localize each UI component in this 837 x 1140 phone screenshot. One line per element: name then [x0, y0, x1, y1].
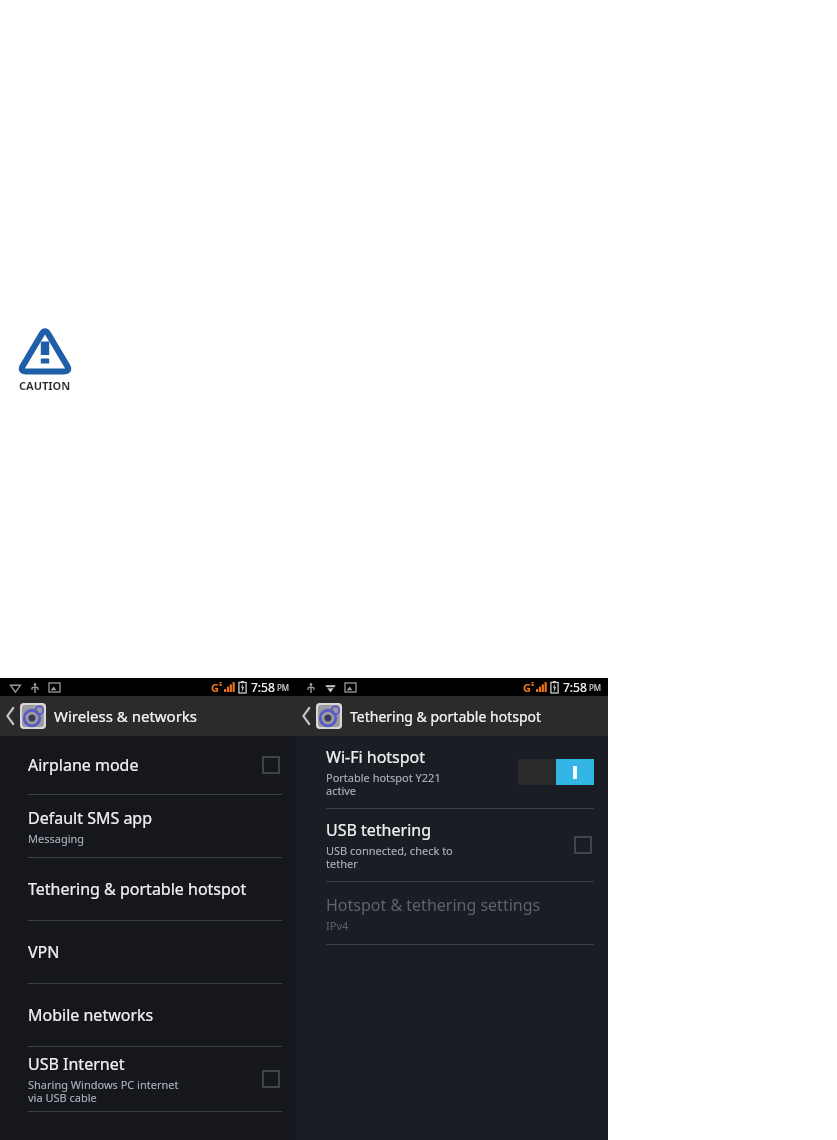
- staticText: G: [211, 680, 219, 695]
- staticText: 7:58: [251, 679, 275, 695]
- button[interactable]: Airplane mode: [0, 736, 296, 794]
- button[interactable]: VPN: [0, 921, 296, 983]
- staticText: IPv4: [326, 918, 349, 933]
- button[interactable]: Toggle checkbox: [260, 1068, 282, 1090]
- staticText: VPN: [28, 941, 60, 963]
- staticText: G: [523, 680, 531, 695]
- staticText: Default SMS app: [28, 807, 153, 829]
- staticText: PM: [589, 682, 602, 693]
- staticText: Wireless & networks: [54, 706, 198, 726]
- staticText: 7:58: [563, 679, 587, 695]
- button[interactable]: USB tethering: [296, 809, 608, 881]
- staticText: E: [219, 680, 223, 688]
- staticText: Wi-Fi hotspot: [326, 746, 426, 768]
- staticText: Airplane mode: [28, 754, 139, 776]
- button[interactable]: Wi-Fi hotspot: [296, 736, 608, 808]
- staticText: Hotspot & tethering settings: [326, 894, 541, 916]
- staticText: Messaging: [28, 831, 85, 846]
- other: Back: [302, 708, 311, 724]
- staticText: Mobile networks: [28, 1004, 154, 1026]
- button[interactable]: USB Internet: [0, 1047, 296, 1111]
- button[interactable]: Default SMS app: [0, 795, 296, 857]
- staticText: Sharing Windows PC internet via USB cabl…: [28, 1077, 179, 1105]
- staticText: Tethering & portable hotspot: [350, 707, 542, 726]
- staticText: E: [531, 680, 535, 688]
- button[interactable]: Tethering & portable hotspot: [0, 858, 296, 920]
- button[interactable]: Toggle checkbox: [260, 754, 282, 776]
- staticText: USB connected, check to tether: [326, 843, 453, 871]
- staticText: CAUTION: [19, 378, 71, 393]
- staticText: Portable hotspot Y221 active: [326, 770, 441, 798]
- staticText: USB Internet: [28, 1053, 125, 1075]
- button[interactable]: Back: [296, 696, 608, 736]
- button[interactable]: Hotspot & tethering settings: [296, 882, 608, 944]
- button[interactable]: Back: [0, 696, 296, 736]
- staticText: Tethering & portable hotspot: [28, 878, 247, 900]
- button[interactable]: Mobile networks: [0, 984, 296, 1046]
- staticText: USB tethering: [326, 819, 431, 841]
- button[interactable]: Toggle checkbox: [572, 834, 594, 856]
- other: Back: [6, 708, 15, 724]
- button[interactable]: Wi-Fi hotspot switch: [518, 759, 594, 785]
- staticText: PM: [277, 682, 290, 693]
